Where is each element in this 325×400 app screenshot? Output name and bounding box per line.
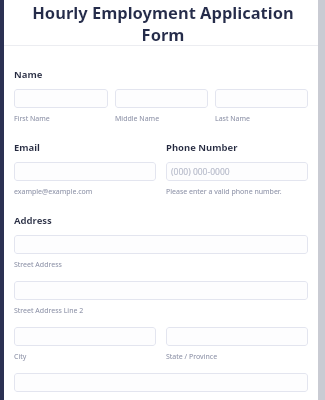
staticText: example@example.com — [14, 187, 93, 197]
staticText: Street Address Line 2 — [14, 306, 84, 316]
button[interactable] — [14, 327, 156, 346]
staticText: State / Province — [166, 352, 218, 362]
button[interactable] — [215, 89, 308, 108]
button[interactable]: (000) 000-0000 — [166, 162, 308, 181]
staticText: Last Name — [215, 114, 251, 124]
button[interactable] — [14, 373, 308, 392]
staticText: Please enter a valid phone number. — [166, 187, 282, 197]
button[interactable] — [166, 327, 308, 346]
button[interactable] — [115, 89, 208, 108]
staticText: First Name — [14, 114, 50, 124]
button[interactable] — [14, 162, 156, 181]
button[interactable] — [14, 281, 308, 300]
staticText: (000) 000-0000 — [171, 166, 230, 178]
staticText: Street Address — [14, 260, 62, 270]
staticText: Hourly Employment Application Form — [18, 1, 308, 45]
staticText: Email — [14, 141, 40, 154]
button[interactable] — [14, 235, 308, 254]
button[interactable] — [14, 89, 108, 108]
staticText: Name — [14, 68, 43, 81]
staticText: Address — [14, 214, 52, 227]
staticText: City — [14, 352, 27, 362]
staticText: Phone Number — [166, 141, 238, 154]
staticText: Middle Name — [115, 114, 160, 124]
